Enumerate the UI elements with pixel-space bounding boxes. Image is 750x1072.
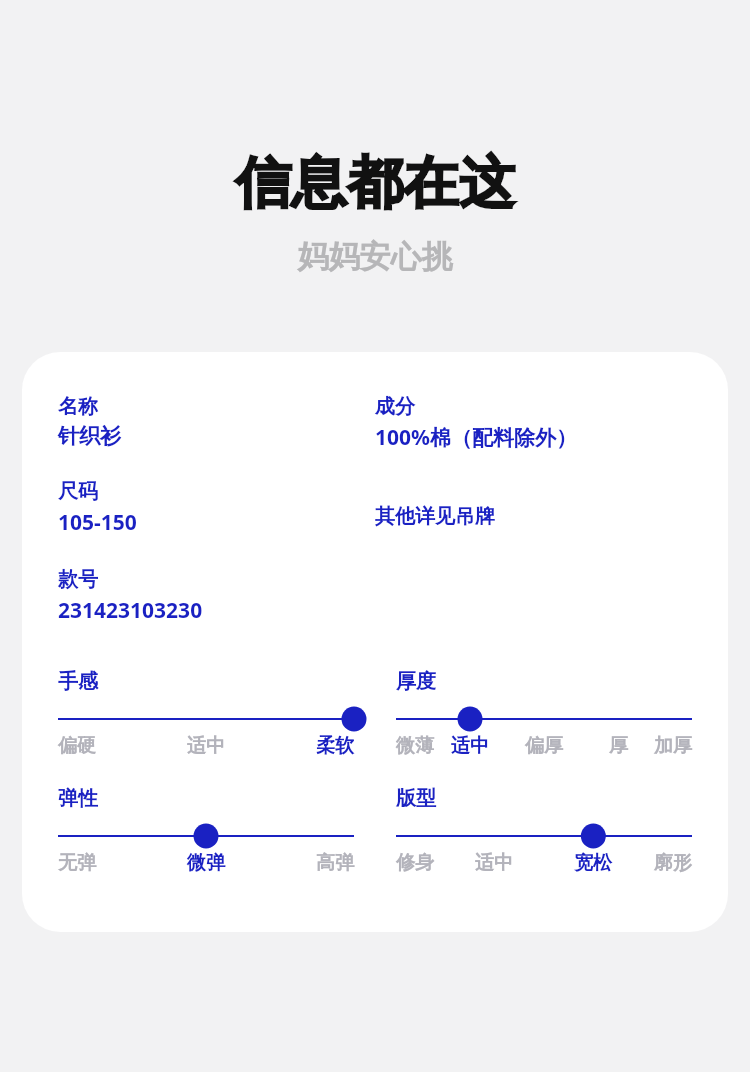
button[interactable]: 名称 [22, 352, 728, 932]
staticText: 231423103230 [58, 596, 203, 625]
staticText: 微弹 [187, 851, 225, 875]
button[interactable]: 厚度 [396, 669, 692, 758]
staticText: 妈妈安心挑 [0, 237, 750, 276]
staticText: 适中 [475, 851, 513, 875]
staticText: 偏厚 [525, 734, 563, 758]
staticText: 其他详见吊牌 [375, 504, 495, 529]
button[interactable]: 手感 [58, 669, 354, 758]
staticText: 偏硬 [58, 734, 96, 758]
staticText: 弹性 [58, 786, 98, 811]
staticText: 柔软 [316, 734, 354, 758]
staticText: 针织衫 [58, 423, 121, 449]
staticText: 成分 [375, 394, 415, 419]
staticText: 适中 [187, 734, 225, 758]
staticText: 宽松 [574, 851, 612, 875]
staticText: 加厚 [654, 734, 692, 758]
staticText: 款号 [58, 567, 98, 592]
staticText: 版型 [396, 786, 436, 811]
staticText: 高弹 [316, 851, 354, 875]
staticText: 信息都在这 [0, 148, 750, 219]
staticText: 厚度 [396, 669, 436, 694]
staticText: 尺码 [58, 479, 98, 504]
staticText: 名称 [58, 394, 98, 419]
staticText: 适中 [451, 734, 489, 758]
button[interactable]: 版型 [396, 786, 692, 875]
staticText: 厚 [609, 734, 628, 758]
staticText: 廓形 [654, 851, 692, 875]
staticText: 微薄 [396, 734, 434, 758]
staticText: 手感 [58, 669, 98, 694]
staticText: 100%棉（配料除外） [375, 423, 577, 452]
staticText: 修身 [396, 851, 434, 875]
staticText: 无弹 [58, 851, 96, 875]
staticText: 105-150 [58, 508, 137, 537]
button[interactable]: 弹性 [58, 786, 354, 875]
